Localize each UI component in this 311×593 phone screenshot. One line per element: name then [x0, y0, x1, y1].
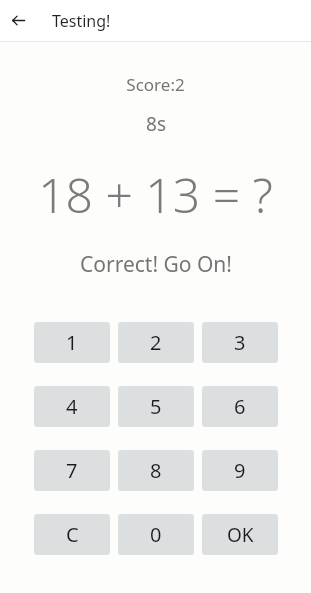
- button[interactable]: 5: [118, 386, 194, 427]
- button[interactable]: 9: [202, 450, 278, 491]
- button[interactable]: Back: [5, 7, 32, 34]
- staticText: Score:2: [126, 73, 185, 96]
- staticText: 18 + 13 = ?: [38, 162, 273, 227]
- staticText: 2: [150, 329, 162, 356]
- button[interactable]: 2: [118, 322, 194, 363]
- button[interactable]: C: [34, 514, 110, 555]
- staticText: C: [66, 521, 79, 548]
- staticText: 8: [150, 457, 162, 484]
- button[interactable]: 1: [34, 322, 110, 363]
- staticText: 1: [66, 329, 78, 356]
- button[interactable]: 6: [202, 386, 278, 427]
- staticText: 0: [150, 521, 162, 548]
- staticText: 6: [234, 393, 246, 420]
- staticText: 5: [150, 393, 162, 420]
- staticText: 4: [66, 393, 78, 420]
- staticText: Correct! Go On!: [80, 250, 232, 279]
- button[interactable]: 3: [202, 322, 278, 363]
- button[interactable]: 7: [34, 450, 110, 491]
- staticText: 7: [66, 457, 78, 484]
- button[interactable]: 4: [34, 386, 110, 427]
- staticText: 9: [234, 457, 246, 484]
- staticText: 8s: [146, 111, 166, 137]
- staticText: OK: [227, 522, 254, 548]
- button[interactable]: 8: [118, 450, 194, 491]
- button[interactable]: OK: [202, 514, 278, 555]
- button[interactable]: 0: [118, 514, 194, 555]
- staticText: 3: [234, 329, 246, 356]
- staticText: Testing!: [52, 10, 111, 32]
